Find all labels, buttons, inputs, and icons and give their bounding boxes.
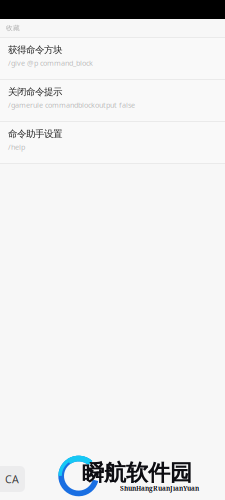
staticText: /gamerule commandblockoutput false	[8, 100, 135, 110]
button[interactable]: 获得命令方块	[0, 38, 225, 79]
staticText: ShunHangRuanJianYuan	[120, 484, 199, 493]
staticText: /give @p command_block	[8, 58, 93, 68]
button[interactable]: CA	[0, 466, 25, 492]
staticText: 收藏	[6, 24, 20, 32]
staticText: /help	[8, 142, 25, 152]
staticText: 命令助手设置	[8, 128, 62, 140]
staticText: CA	[5, 472, 19, 486]
staticText: 瞬航软件园	[82, 459, 192, 487]
button[interactable]: 命令助手设置	[0, 122, 225, 163]
staticText: 关闭命令提示	[8, 86, 62, 98]
button[interactable]: 关闭命令提示	[0, 80, 225, 121]
staticText: 获得命令方块	[8, 44, 62, 56]
